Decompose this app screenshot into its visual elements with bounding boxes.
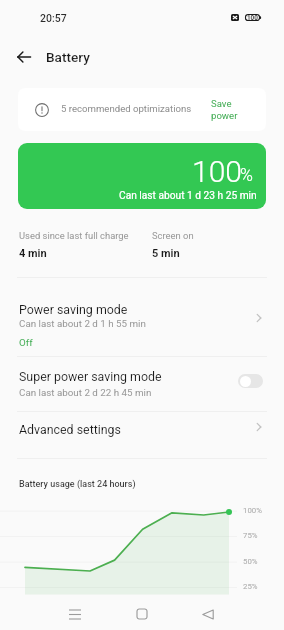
staticText: %	[240, 165, 253, 186]
button[interactable]: Home	[124, 598, 160, 630]
button[interactable]: Advanced settings	[0, 412, 284, 458]
staticText: Screen on	[152, 230, 194, 241]
staticText: Off	[19, 337, 33, 348]
staticText: 75%	[243, 531, 258, 540]
staticText: Advanced settings	[19, 422, 121, 437]
button[interactable]: Power saving mode	[0, 278, 284, 356]
staticText: Save power	[211, 98, 238, 121]
staticText: Can last about 2 d 22 h 45 min	[19, 387, 152, 398]
button[interactable]: 100	[18, 143, 266, 209]
staticText: Used since last full charge	[19, 230, 129, 241]
button[interactable]: Super power saving mode	[0, 357, 284, 411]
staticText: Super power saving mode	[19, 369, 162, 384]
button[interactable]: 5 recommended optimizations	[18, 88, 266, 131]
staticText: 100%	[243, 506, 262, 515]
staticText: 100	[192, 154, 242, 189]
button[interactable]: Back	[10, 43, 38, 71]
staticText: Battery usage (last 24 hours)	[19, 479, 136, 490]
staticText: 100	[247, 14, 258, 21]
staticText: 5 recommended optimizations	[61, 103, 192, 114]
button[interactable]: Back	[190, 598, 226, 630]
staticText: 50%	[243, 557, 258, 566]
staticText: 5 min	[152, 247, 180, 260]
staticText: Power saving mode	[19, 302, 128, 317]
staticText: Battery	[46, 49, 90, 65]
button[interactable]: Recent apps	[57, 598, 93, 630]
staticText: 20:57	[40, 12, 67, 24]
staticText: Can last about 1 d 23 h 25 min	[119, 190, 257, 202]
staticText: 25%	[243, 582, 258, 591]
staticText: Can last about 2 d 1 h 55 min	[19, 318, 146, 329]
staticText: 4 min	[19, 247, 47, 260]
